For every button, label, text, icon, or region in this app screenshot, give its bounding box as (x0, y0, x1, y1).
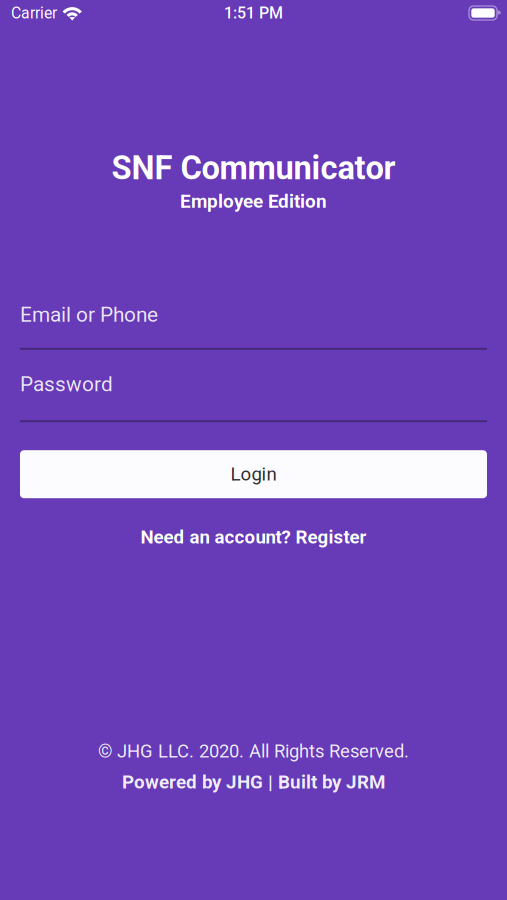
button[interactable]: Password (20, 372, 487, 422)
staticText: © JHG LLC. 2020. All Rights Reserved. (98, 740, 409, 762)
button[interactable]: Login (0, 450, 507, 498)
button[interactable]: Need an account? Register (124, 521, 382, 553)
staticText: Login (230, 463, 276, 485)
staticText: Employee Edition (180, 190, 327, 212)
button[interactable]: Email or Phone (20, 302, 487, 350)
staticText: Powered by JHG | Built by JRM (122, 771, 385, 793)
staticText: Password (20, 372, 113, 396)
staticText: Email or Phone (20, 302, 158, 327)
staticText: Carrier (11, 4, 57, 22)
staticText: Need an account? Register (140, 526, 366, 548)
staticText: 1:51 PM (224, 4, 283, 22)
staticText: SNF Communicator (111, 149, 395, 187)
